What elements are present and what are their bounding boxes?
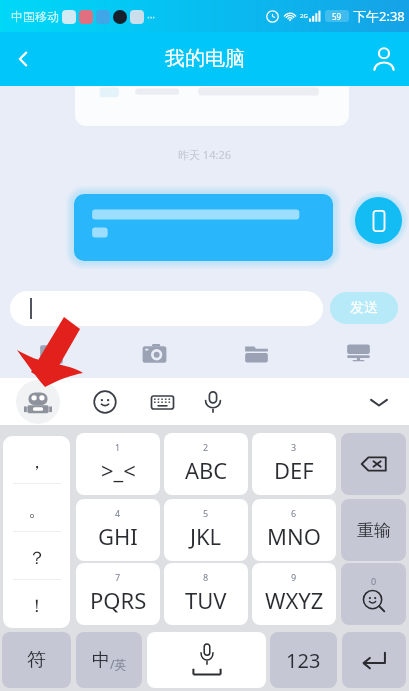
staticText: 123 xyxy=(286,647,321,674)
button[interactable]: Device avatar xyxy=(355,197,402,244)
button[interactable]: ！ xyxy=(3,580,70,628)
button[interactable]: My computer xyxy=(307,330,409,378)
staticText: 昨天 14:26 xyxy=(178,147,231,162)
button[interactable]: Voice input xyxy=(147,632,266,688)
button[interactable]: 2 xyxy=(164,433,248,495)
button[interactable]: Camera xyxy=(103,330,205,378)
staticText: GHI xyxy=(98,521,138,551)
staticText: 发送 xyxy=(350,299,378,317)
staticText: 0 xyxy=(371,575,377,587)
staticText: 8 xyxy=(203,571,209,583)
staticText: ！ xyxy=(28,595,46,618)
staticText: /英 xyxy=(110,656,127,672)
staticText: WXYZ xyxy=(265,585,324,615)
staticText: 7 xyxy=(115,571,121,583)
staticText: 2 xyxy=(203,441,209,453)
button[interactable]: Contact profile xyxy=(359,34,409,84)
staticText: ABC xyxy=(185,455,228,485)
button[interactable]: 中 xyxy=(76,632,142,688)
staticText: MNO xyxy=(267,521,321,551)
staticText: 中国移动 xyxy=(11,9,59,24)
button[interactable]: 123 xyxy=(270,632,337,688)
button[interactable]: 7 xyxy=(76,563,160,625)
button[interactable]: Keyboard xyxy=(143,383,181,421)
button[interactable]: Files xyxy=(205,330,307,378)
staticText: 6 xyxy=(291,507,297,519)
button[interactable]: Emoji xyxy=(86,383,124,421)
staticText: 2G xyxy=(300,12,308,20)
staticText: TUV xyxy=(185,585,227,615)
staticText: 59 xyxy=(332,11,342,22)
staticText: ··· xyxy=(147,10,156,24)
staticText: 5 xyxy=(203,507,209,519)
button[interactable]: 1 xyxy=(76,433,160,495)
staticText: 中 xyxy=(92,649,110,672)
button[interactable]: Enter xyxy=(342,632,406,688)
button[interactable]: 5 xyxy=(164,499,248,561)
staticText: 下午2:38 xyxy=(353,7,405,25)
button[interactable]: 0 xyxy=(341,563,406,625)
staticText: >_< xyxy=(101,455,136,485)
staticText: 重输 xyxy=(357,520,391,541)
staticText: DEF xyxy=(274,455,314,485)
button[interactable]: AI assistant xyxy=(16,380,60,424)
button[interactable]: Voice input xyxy=(194,383,232,421)
button[interactable] xyxy=(74,194,333,261)
button[interactable]: Back xyxy=(0,36,46,82)
button[interactable]: 9 xyxy=(252,563,336,625)
button[interactable]: 6 xyxy=(252,499,336,561)
button[interactable]: 3 xyxy=(252,433,336,495)
staticText: 9 xyxy=(291,571,297,583)
button[interactable]: Photos xyxy=(0,330,103,378)
button[interactable]: ？ xyxy=(3,532,70,580)
staticText: PQRS xyxy=(90,585,147,615)
staticText: 符 xyxy=(27,648,46,672)
button[interactable]: 重输 xyxy=(341,499,406,561)
staticText: ， xyxy=(28,451,46,474)
staticText: 4 xyxy=(115,507,121,519)
staticText: ？ xyxy=(28,547,46,570)
staticText: 。 xyxy=(28,499,46,522)
button[interactable]: 。 xyxy=(3,484,70,532)
staticText: 1 xyxy=(115,441,121,453)
button[interactable]: 8 xyxy=(164,563,248,625)
staticText: 我的电脑 xyxy=(165,46,245,71)
staticText: 3 xyxy=(291,441,297,453)
button[interactable]: 发送 xyxy=(330,292,398,324)
button[interactable]: Delete xyxy=(341,433,406,495)
button[interactable]: ， xyxy=(3,436,70,484)
button[interactable]: Hide keyboard xyxy=(357,380,401,424)
staticText: JKL xyxy=(190,521,222,551)
button[interactable] xyxy=(10,291,323,326)
button[interactable]: 符 xyxy=(2,632,71,688)
button[interactable]: 4 xyxy=(76,499,160,561)
